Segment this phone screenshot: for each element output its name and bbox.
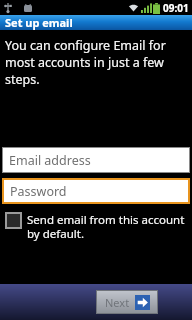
staticText: Send email from this account by default.	[27, 212, 187, 241]
staticText: 09:01	[163, 1, 189, 15]
staticText: Email address	[9, 152, 91, 169]
button[interactable]: Send email from this account by default.	[5, 212, 187, 241]
button[interactable]: Next	[97, 291, 157, 313]
staticText: Password	[10, 183, 67, 200]
staticText: Next	[105, 295, 130, 310]
button[interactable]: Password	[4, 180, 188, 202]
staticText: You can configure Email for most account…	[5, 37, 187, 88]
button[interactable]: Email address	[3, 148, 189, 172]
other: Next	[135, 295, 150, 310]
staticText: Set up email	[5, 15, 73, 30]
